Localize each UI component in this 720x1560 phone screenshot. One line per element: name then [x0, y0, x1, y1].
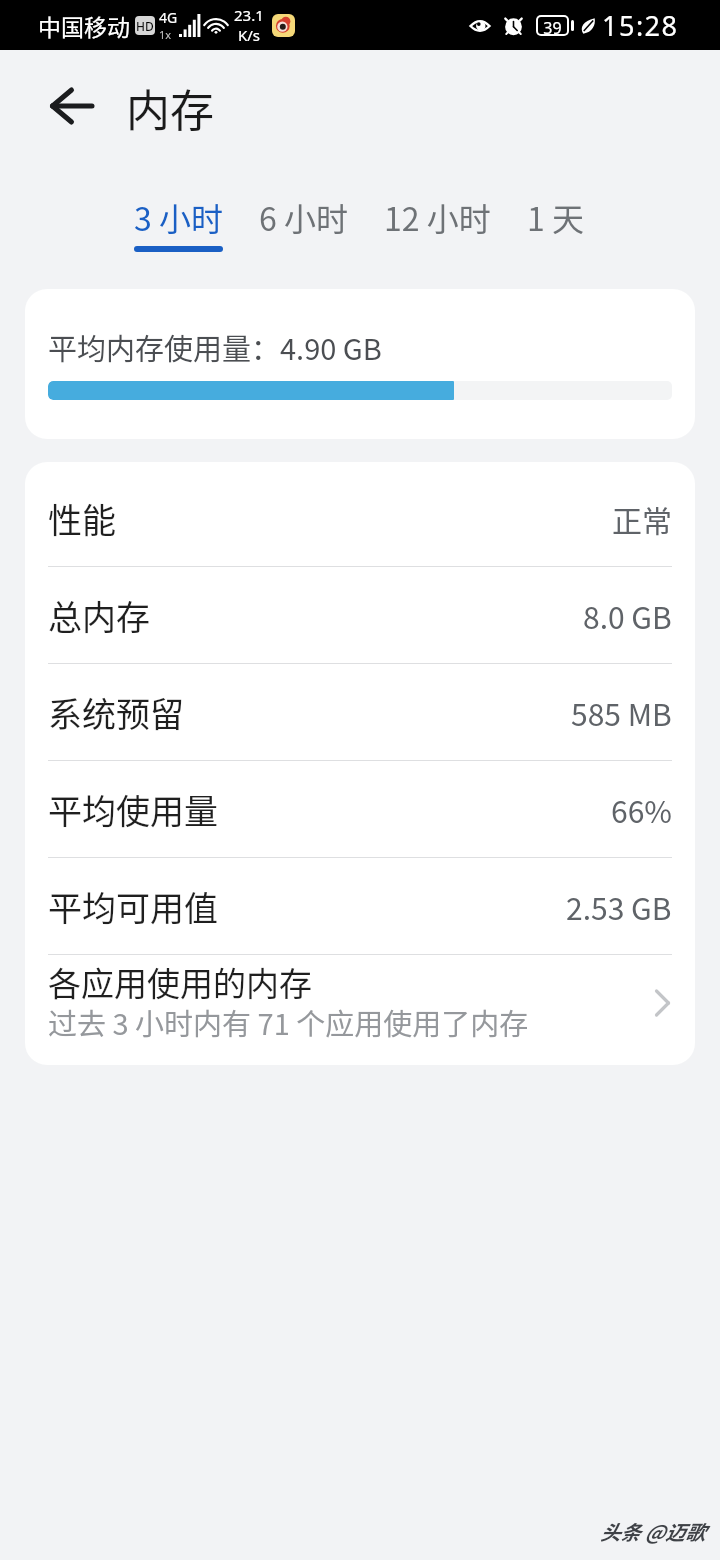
- staticText: 内存: [126, 76, 214, 140]
- staticText: 23.1: [234, 5, 264, 25]
- staticText: 头条 @迈歌: [600, 1517, 705, 1546]
- staticText: 66%: [611, 788, 672, 831]
- staticText: 过去 3 小时内有 71 个应用使用了内存: [48, 1001, 529, 1043]
- other: Power saving: [580, 18, 595, 34]
- staticText: 各应用使用的内存: [48, 958, 312, 1006]
- button[interactable]: Back: [20, 53, 124, 157]
- staticText: 8.0 GB: [583, 594, 672, 637]
- staticText: 12 小时: [384, 194, 491, 240]
- other: Signal strength: [179, 14, 199, 37]
- other: Weibo notification: [272, 14, 295, 37]
- staticText: 4G: [159, 8, 178, 27]
- button[interactable]: 6 小时: [241, 164, 366, 278]
- button[interactable]: 平均可用值: [25, 858, 695, 954]
- staticText: 585 MB: [571, 691, 672, 734]
- staticText: 15:28: [602, 7, 679, 44]
- other: Eye comfort: [470, 18, 490, 34]
- button[interactable]: 各应用使用的内存: [25, 955, 695, 1065]
- button[interactable]: 1 天: [509, 164, 602, 278]
- staticText: 2.53 GB: [566, 885, 672, 928]
- button[interactable]: 性能: [25, 470, 695, 566]
- staticText: 6 小时: [259, 194, 348, 240]
- other: Wi-Fi: [204, 16, 228, 35]
- staticText: HD: [136, 18, 154, 34]
- staticText: 平均使用量: [48, 785, 218, 834]
- staticText: 1x: [159, 27, 172, 42]
- staticText: 系统预留: [48, 688, 184, 737]
- staticText: 中国移动: [38, 9, 130, 42]
- button[interactable]: 3 小时: [116, 164, 241, 278]
- staticText: K/s: [238, 25, 261, 45]
- staticText: 3 小时: [134, 194, 223, 240]
- staticText: 平均可用值: [48, 882, 218, 931]
- button[interactable]: 总内存: [25, 567, 695, 663]
- other: Alarm: [503, 15, 524, 36]
- staticText: 1 天: [527, 194, 584, 240]
- button[interactable]: 系统预留: [25, 664, 695, 760]
- other: Open app memory usage: [654, 989, 672, 1017]
- button[interactable]: 12 小时: [366, 164, 509, 278]
- staticText: 正常: [612, 497, 672, 540]
- staticText: 平均内存使用量：4.90 GB: [48, 326, 382, 368]
- button[interactable]: 平均使用量: [25, 761, 695, 857]
- staticText: 39: [543, 17, 562, 34]
- staticText: 性能: [48, 494, 116, 543]
- staticText: 总内存: [48, 591, 150, 640]
